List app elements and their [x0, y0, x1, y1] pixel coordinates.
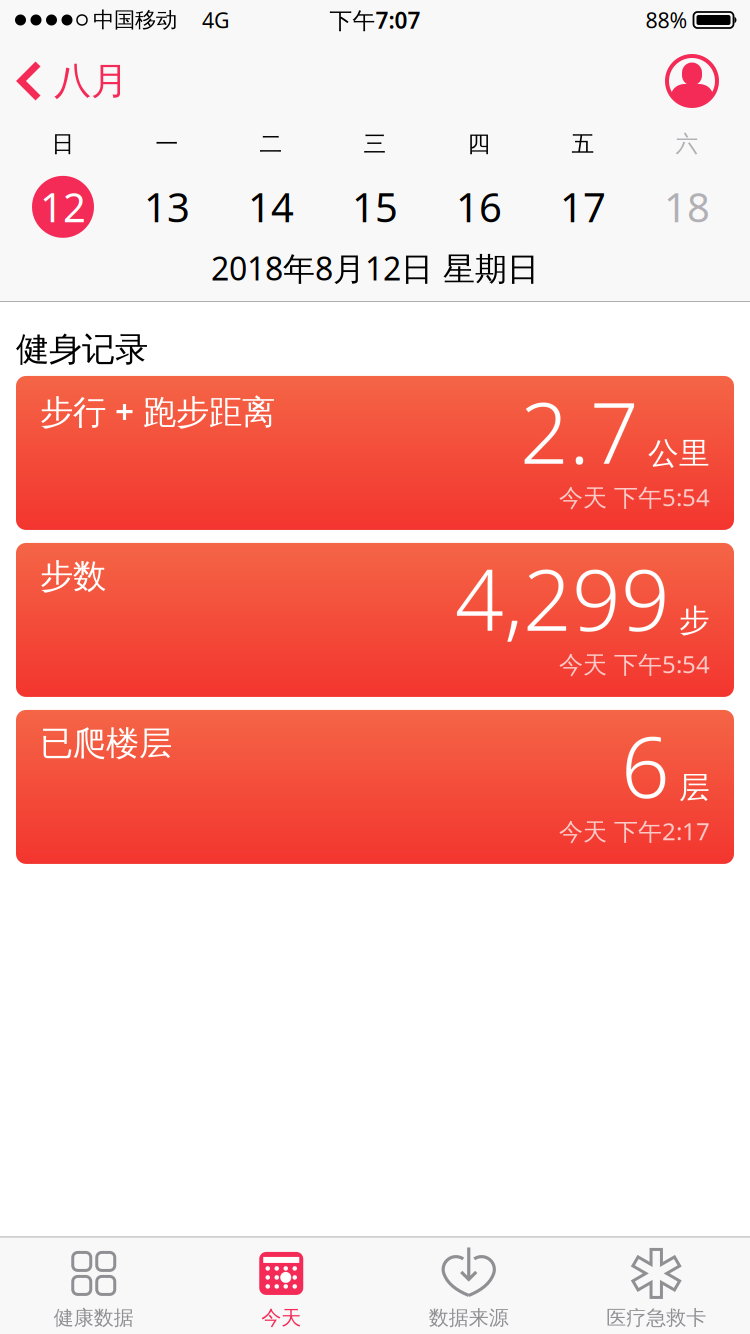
staticText: 今天 下午5:54: [559, 481, 710, 513]
staticText: 公里: [648, 435, 710, 472]
staticText: 日: [51, 130, 74, 158]
staticText: 15: [352, 180, 398, 233]
staticText: 六: [675, 130, 698, 158]
staticText: 中国移动: [93, 7, 177, 33]
staticText: 健身记录: [16, 329, 148, 370]
button[interactable]: 今天: [187, 1247, 375, 1330]
staticText: 18: [664, 180, 710, 233]
button[interactable]: 数据来源: [375, 1247, 562, 1330]
staticText: 12: [40, 180, 86, 233]
staticText: 今天 下午5:54: [559, 648, 710, 680]
staticText: 2.7: [520, 374, 639, 487]
staticText: 4,299: [455, 541, 670, 654]
staticText: 数据来源: [429, 1305, 509, 1330]
button[interactable]: 15: [323, 171, 427, 243]
staticText: 层: [679, 769, 710, 806]
button[interactable]: 16: [427, 171, 531, 243]
button[interactable]: [666, 55, 718, 107]
staticText: 已爬楼层: [40, 723, 172, 764]
staticText: 88%: [645, 6, 687, 34]
button[interactable]: 步行 + 跑步距离: [16, 376, 734, 530]
staticText: 今天 下午2:17: [559, 815, 710, 847]
staticText: 健康数据: [54, 1305, 134, 1330]
staticText: 二: [259, 130, 282, 158]
button[interactable]: 步数: [16, 543, 734, 697]
staticText: 步数: [40, 556, 106, 597]
staticText: 6: [621, 708, 670, 821]
staticText: 八月: [54, 58, 128, 104]
staticText: 医疗急救卡: [606, 1305, 706, 1330]
staticText: 一: [155, 130, 178, 158]
button[interactable]: 17: [531, 171, 635, 243]
button[interactable]: 健康数据: [0, 1247, 187, 1330]
staticText: 4G: [202, 6, 230, 34]
staticText: 14: [248, 180, 294, 233]
button[interactable]: 12: [11, 171, 115, 243]
staticText: 三: [363, 130, 386, 158]
staticText: 下午7:07: [329, 5, 420, 35]
staticText: 今天: [261, 1305, 301, 1330]
staticText: 四: [467, 130, 490, 158]
staticText: 步行 + 跑步距离: [40, 389, 275, 433]
button[interactable]: 13: [115, 171, 219, 243]
staticText: 步: [679, 602, 710, 639]
staticText: 13: [144, 180, 190, 233]
staticText: 五: [571, 130, 594, 158]
button[interactable]: 八月: [18, 58, 128, 104]
staticText: 17: [560, 180, 606, 233]
button[interactable]: 18: [635, 171, 739, 243]
staticText: 2018年8月12日 星期日: [211, 247, 539, 289]
staticText: 16: [456, 180, 502, 233]
button[interactable]: 14: [219, 171, 323, 243]
button[interactable]: 医疗急救卡: [562, 1247, 750, 1330]
button[interactable]: 已爬楼层: [16, 710, 734, 864]
